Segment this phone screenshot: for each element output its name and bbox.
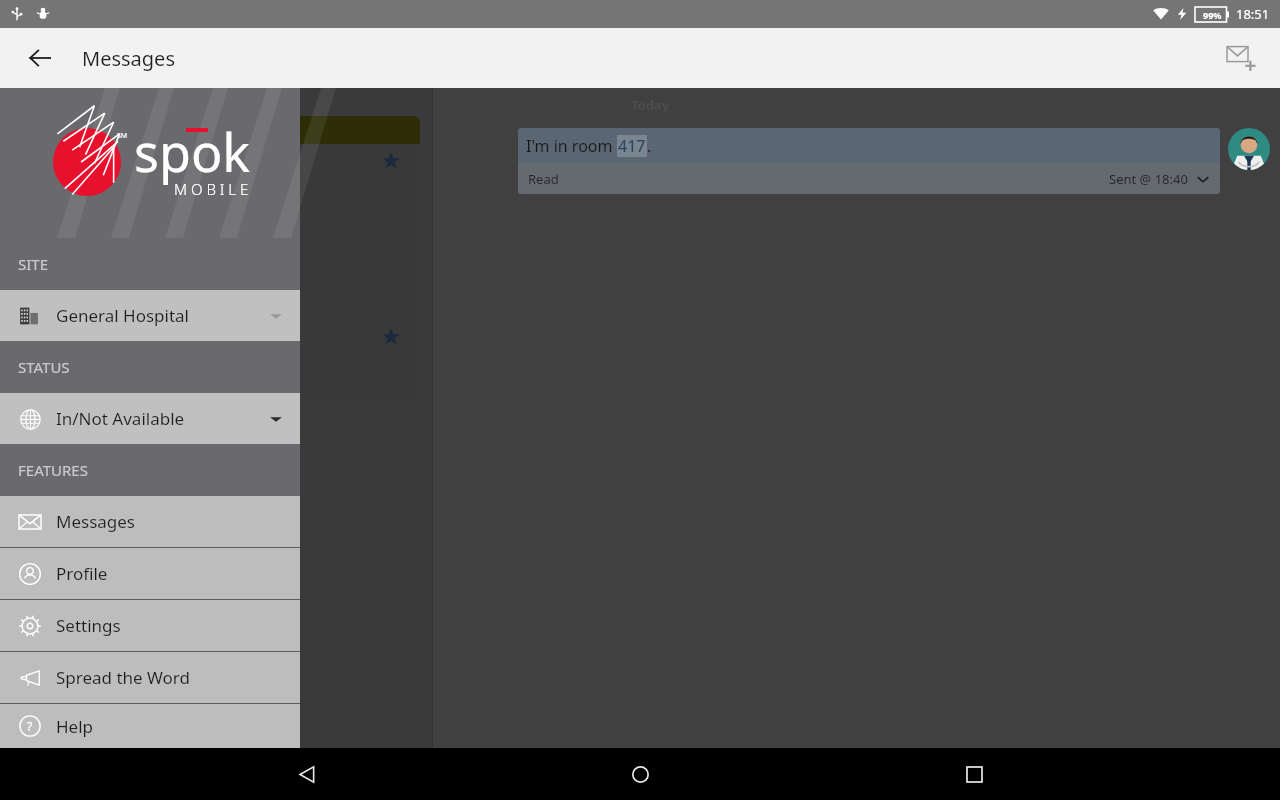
button[interactable]: Recent apps bbox=[946, 748, 1002, 800]
button[interactable]: Messages bbox=[0, 496, 300, 547]
button[interactable] bbox=[8, 144, 420, 236]
staticText: In/Not Available bbox=[56, 407, 185, 430]
staticText: SITE bbox=[18, 254, 49, 274]
button[interactable]: Back bbox=[278, 748, 334, 800]
button[interactable]: I'm in room bbox=[518, 128, 1220, 194]
staticText: 417 bbox=[618, 135, 646, 157]
staticText: M O B I L E bbox=[174, 179, 249, 199]
button[interactable]: In/Not Available bbox=[0, 393, 300, 444]
staticText: Help bbox=[56, 715, 94, 738]
staticText: STATUS bbox=[18, 357, 70, 377]
staticText: . bbox=[647, 135, 652, 157]
button[interactable]: Settings bbox=[0, 600, 300, 651]
staticText: Profile bbox=[56, 562, 108, 585]
staticText: Messages bbox=[82, 45, 175, 72]
staticText: ? bbox=[27, 718, 33, 734]
staticText: Sent @ 18:40 bbox=[1109, 170, 1188, 188]
staticText: I'm in room bbox=[526, 135, 617, 157]
staticText: 18:51 bbox=[1236, 5, 1270, 23]
button[interactable]: ? bbox=[0, 704, 300, 748]
staticText: Spread the Word bbox=[56, 666, 191, 689]
button[interactable]: Sender avatar bbox=[1228, 128, 1270, 170]
staticText: SM bbox=[117, 131, 128, 141]
staticText: FEATURES bbox=[18, 460, 88, 480]
staticText: 99% bbox=[1203, 9, 1222, 21]
button[interactable]: General Hospital bbox=[0, 290, 300, 341]
staticText: Settings bbox=[56, 614, 121, 637]
button[interactable]: Home bbox=[612, 748, 668, 800]
staticText: General Hospital bbox=[56, 304, 190, 327]
staticText: Messages bbox=[56, 510, 136, 533]
button[interactable] bbox=[8, 238, 420, 318]
button[interactable]: Profile bbox=[0, 548, 300, 599]
button[interactable]: Spread the Word bbox=[0, 652, 300, 703]
staticText: spok bbox=[134, 116, 251, 187]
button[interactable]: Back bbox=[16, 34, 64, 82]
button[interactable] bbox=[8, 320, 420, 398]
button[interactable]: New message bbox=[1218, 34, 1266, 82]
staticText: Read bbox=[528, 170, 559, 188]
